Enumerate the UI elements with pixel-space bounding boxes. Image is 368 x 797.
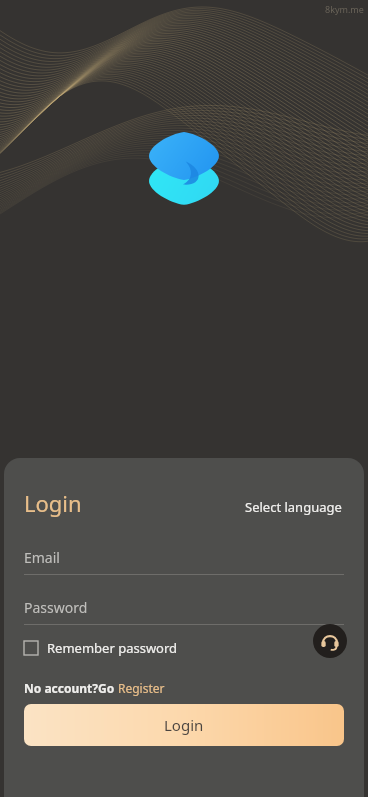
button[interactable]: Login — [24, 704, 344, 746]
button[interactable]: No account?Go — [24, 680, 165, 696]
button[interactable]: Select language — [243, 496, 344, 518]
button[interactable]: Password — [24, 596, 344, 618]
staticText: Login — [24, 488, 82, 518]
staticText: 8kym.me — [325, 3, 364, 15]
staticText: Email — [24, 548, 60, 567]
staticText: Remember password — [47, 639, 178, 657]
staticText: No account?Go — [24, 680, 118, 696]
button[interactable]: Email — [24, 546, 344, 568]
button[interactable]: Remember password — [24, 635, 178, 661]
staticText: Select language — [245, 498, 342, 516]
staticText: Register — [118, 680, 165, 696]
staticText: Password — [24, 598, 88, 617]
button[interactable]: Customer support — [313, 624, 347, 658]
staticText: Login — [164, 715, 204, 735]
